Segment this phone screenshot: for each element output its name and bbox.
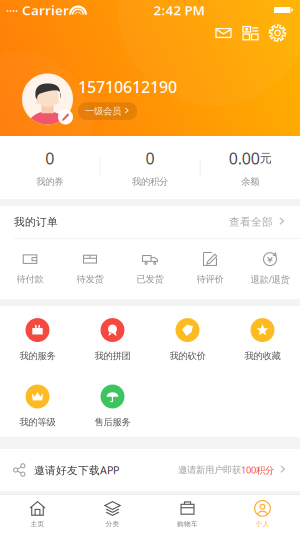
- staticText: 0: [145, 148, 154, 169]
- staticText: 余额: [241, 176, 259, 187]
- button[interactable]: 分类: [75, 500, 150, 528]
- staticText: 邀请好友下载APP: [34, 463, 119, 477]
- button[interactable]: 我的服务: [0, 318, 75, 361]
- staticText: 待付款: [16, 273, 43, 285]
- button[interactable]: 0.00: [201, 137, 300, 198]
- staticText: 购物车: [177, 520, 198, 528]
- button[interactable]: 一级会员: [78, 102, 137, 120]
- staticText: 查看全部: [229, 215, 273, 228]
- button[interactable]: 0: [100, 137, 200, 198]
- button[interactable]: Messages: [210, 19, 237, 46]
- staticText: 邀请新用户即获: [178, 464, 241, 476]
- button[interactable]: 待评价: [180, 250, 240, 285]
- button[interactable]: 退款/退货: [240, 250, 300, 285]
- staticText: 0: [45, 148, 54, 169]
- button[interactable]: 售后服务: [75, 384, 150, 428]
- staticText: 我的券: [36, 176, 63, 187]
- staticText: 我的订单: [14, 215, 58, 228]
- button[interactable]: 我的订单: [0, 206, 300, 238]
- button[interactable]: 个人: [225, 500, 300, 528]
- staticText: 2:42 PM: [153, 1, 204, 19]
- button[interactable]: 我的拼团: [75, 318, 150, 361]
- staticText: Carrier: [22, 1, 69, 19]
- staticText: 我的等级: [19, 416, 55, 428]
- staticText: 待评价: [196, 273, 223, 285]
- button[interactable]: 已发货: [120, 250, 180, 285]
- button[interactable]: 我的等级: [0, 384, 75, 428]
- button[interactable]: 我的砍价: [150, 318, 225, 361]
- staticText: 我的服务: [19, 350, 55, 361]
- button[interactable]: 主页: [0, 500, 75, 528]
- button[interactable]: 0: [0, 137, 99, 198]
- staticText: 我的拼团: [94, 350, 130, 361]
- staticText: 分类: [105, 520, 119, 528]
- staticText: 一级会员: [85, 105, 121, 117]
- staticText: 我的积分: [132, 176, 168, 187]
- staticText: 售后服务: [94, 416, 130, 428]
- staticText: 我的砍价: [169, 350, 205, 361]
- button[interactable]: 我的收藏: [225, 318, 300, 361]
- button[interactable]: 邀请好友下载APP: [0, 449, 300, 491]
- staticText: 待发货: [76, 273, 103, 285]
- staticText: 个人: [255, 520, 269, 528]
- button[interactable]: 购物车: [150, 500, 225, 528]
- staticText: 已发货: [136, 273, 163, 285]
- staticText: 100积分: [241, 464, 274, 476]
- staticText: 0.00: [229, 148, 260, 169]
- button[interactable]: Edit avatar: [22, 73, 73, 124]
- button[interactable]: 待付款: [0, 250, 60, 285]
- staticText: 退款/退货: [250, 273, 289, 285]
- staticText: 15710612190: [78, 76, 177, 97]
- staticText: 我的收藏: [244, 350, 280, 361]
- button[interactable]: Settings: [264, 19, 291, 46]
- button[interactable]: Scan: [237, 19, 264, 46]
- staticText: 元: [260, 151, 272, 166]
- staticText: 主页: [30, 520, 44, 528]
- button[interactable]: 待发货: [60, 250, 120, 285]
